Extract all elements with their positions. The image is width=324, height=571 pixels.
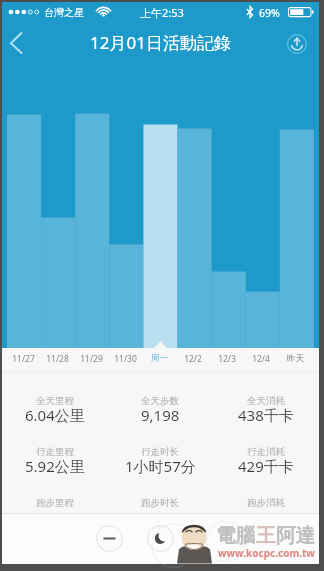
button[interactable]: 429千卡 (213, 456, 319, 476)
staticText: 跑步消耗 (247, 497, 285, 509)
staticText: 電腦 (216, 523, 255, 548)
staticText: 11/29 (80, 353, 103, 365)
staticText: 跑步里程 (36, 497, 74, 509)
button[interactable] (107, 508, 213, 528)
staticText: 昨天 (287, 353, 304, 364)
staticText: 12/4 (252, 353, 270, 365)
button[interactable]: Back (2, 24, 38, 60)
button[interactable]: 5.92公里 (2, 456, 107, 476)
staticText: 429千卡 (238, 456, 294, 476)
staticText: 11/28 (46, 353, 69, 365)
staticText: 6.04公里 (25, 405, 85, 425)
staticText: 9,198 (141, 405, 180, 425)
staticText: 上午2:53 (140, 5, 184, 20)
staticText: 行走里程 (36, 446, 74, 458)
staticText: 台灣之星 (44, 6, 84, 19)
button[interactable]: Sleep (147, 525, 174, 552)
staticText: 69% (259, 6, 280, 20)
staticText: 12月01日活動記錄 (90, 31, 231, 54)
button[interactable] (213, 508, 319, 528)
staticText: 11/27 (12, 353, 35, 365)
staticText: 1小时57分 (125, 456, 196, 476)
staticText: 438千卡 (238, 405, 294, 425)
staticText: 王 (256, 523, 276, 548)
button[interactable]: 6.04公里 (2, 405, 107, 425)
staticText: 跑步时长 (141, 497, 179, 509)
staticText: 12/2 (184, 353, 202, 365)
staticText: 周一 (151, 353, 168, 364)
staticText: 全天步数 (141, 395, 179, 407)
button[interactable] (2, 508, 107, 528)
staticText: 11/30 (114, 353, 137, 365)
staticText: 5.92公里 (25, 456, 85, 476)
button[interactable]: Mute (96, 525, 123, 552)
staticText: 阿達 (276, 523, 315, 548)
button[interactable]: 438千卡 (213, 405, 319, 425)
staticText: 行走时长 (141, 446, 179, 458)
button[interactable]: 1小时57分 (107, 456, 213, 476)
staticText: 全天消耗 (247, 395, 285, 407)
button[interactable]: Share (285, 32, 309, 56)
staticText: 行走消耗 (247, 446, 285, 458)
button[interactable]: 9,198 (107, 405, 213, 425)
staticText: 12/3 (218, 353, 236, 365)
staticText: www.kocpc.com.tw (218, 546, 315, 560)
staticText: 全天里程 (36, 395, 74, 407)
